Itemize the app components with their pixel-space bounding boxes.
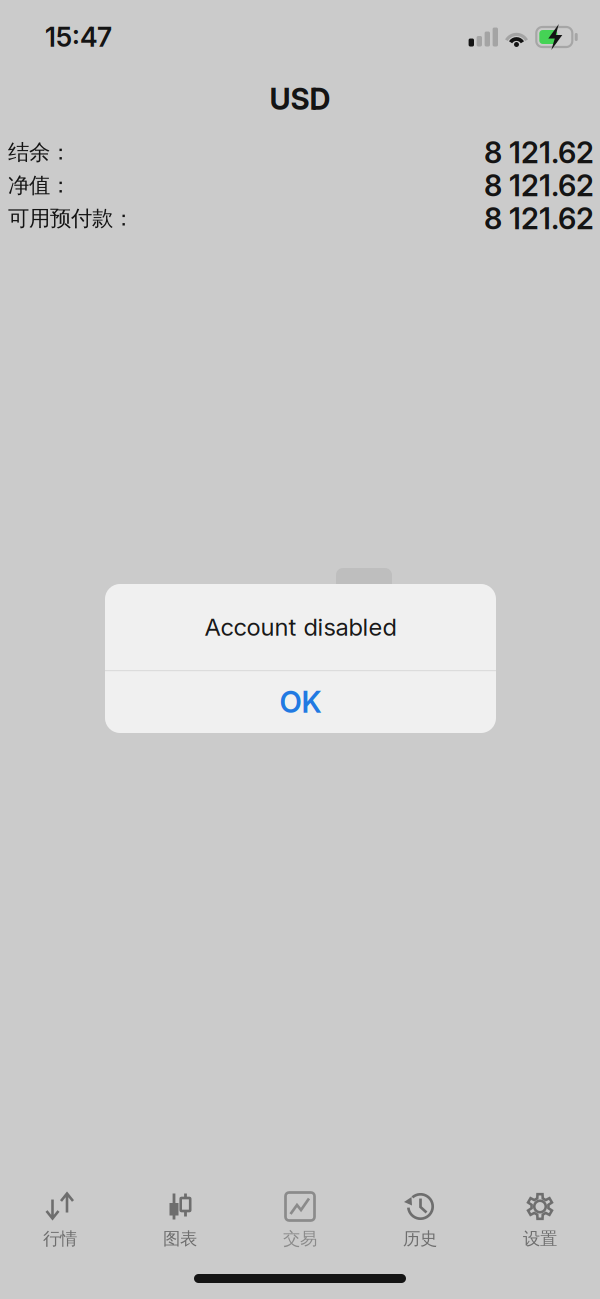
- button[interactable]: OK: [105, 671, 496, 733]
- staticText: 结余：: [8, 139, 71, 166]
- staticText: 图表: [163, 1228, 197, 1249]
- button[interactable]: 图表: [120, 1192, 240, 1249]
- staticText: 15:47: [45, 21, 112, 53]
- staticText: Account disabled: [204, 612, 396, 641]
- staticText: 净值：: [8, 172, 71, 199]
- staticText: OK: [279, 684, 321, 720]
- staticText: 8 121.62: [484, 135, 594, 170]
- button[interactable]: 行情: [0, 1192, 120, 1249]
- staticText: USD: [269, 81, 330, 117]
- staticText: 8 121.62: [484, 201, 594, 236]
- button[interactable]: 历史: [360, 1192, 480, 1249]
- staticText: 可用预付款：: [8, 205, 134, 232]
- staticText: 设置: [523, 1228, 557, 1249]
- staticText: 历史: [403, 1228, 437, 1249]
- button[interactable]: 交易: [240, 1192, 360, 1249]
- staticText: 交易: [283, 1228, 317, 1249]
- staticText: 8 121.62: [484, 168, 594, 203]
- staticText: 行情: [43, 1228, 77, 1249]
- button[interactable]: 设置: [480, 1192, 600, 1249]
